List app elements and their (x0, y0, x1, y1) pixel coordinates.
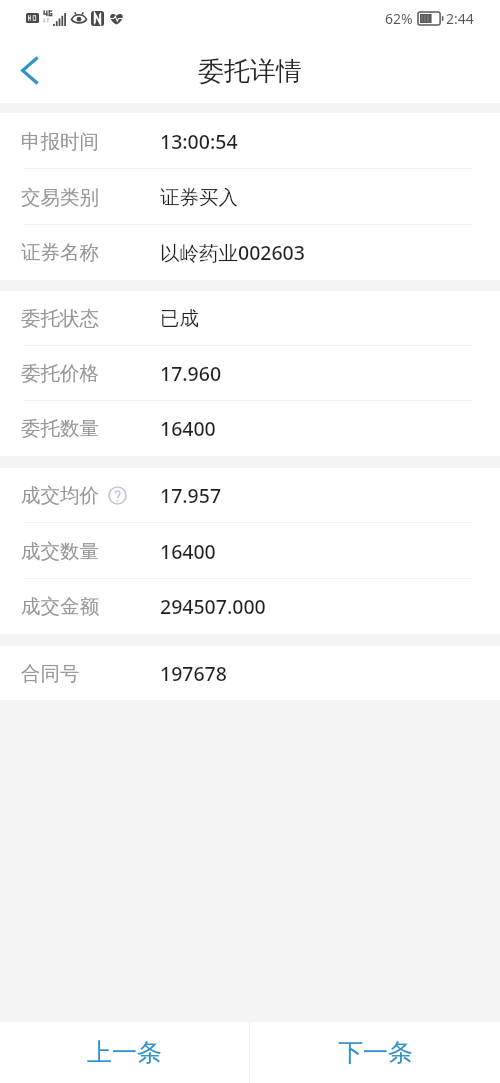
staticText: 交易类别 (21, 185, 99, 210)
staticText: 成交均价 (21, 483, 99, 508)
staticText: 合同号 (21, 661, 80, 686)
button[interactable]: 合同号 (0, 646, 500, 700)
staticText: 证券买入 (160, 185, 238, 210)
staticText: 委托状态 (21, 306, 99, 331)
button[interactable]: 委托状态 (0, 291, 500, 346)
staticText: 已成 (160, 306, 199, 331)
button[interactable]: 成交均价 (0, 468, 500, 523)
button[interactable]: Back (0, 42, 56, 98)
staticText: 16400 (160, 538, 216, 565)
button[interactable]: 下一条 (250, 1022, 500, 1083)
staticText: 成交金额 (21, 594, 99, 619)
button[interactable]: 委托价格 (0, 346, 500, 401)
button[interactable]: 申报时间 (0, 113, 500, 169)
button[interactable]: 成交金额 (0, 579, 500, 634)
staticText: 证券名称 (21, 240, 99, 265)
button[interactable]: 成交数量 (0, 523, 500, 579)
button[interactable]: 证券名称 (0, 225, 500, 280)
button[interactable]: 委托数量 (0, 401, 500, 456)
staticText: 13:00:54 (160, 128, 238, 155)
staticText: 197678 (160, 660, 227, 687)
staticText: 上一条 (87, 1037, 162, 1068)
staticText: 成交数量 (21, 539, 99, 564)
staticText: 以岭药业002603 (160, 239, 305, 266)
staticText: 16400 (160, 415, 216, 442)
staticText: 62% (385, 9, 413, 28)
button[interactable]: 交易类别 (0, 169, 500, 225)
staticText: 委托数量 (21, 416, 99, 441)
staticText: 17.960 (160, 360, 222, 387)
staticText: 委托详情 (198, 55, 302, 88)
staticText: 2:44 (446, 9, 474, 28)
staticText: 委托价格 (21, 361, 99, 386)
staticText: 17.957 (160, 482, 222, 509)
button[interactable]: 上一条 (0, 1022, 249, 1083)
staticText: 294507.000 (160, 593, 266, 620)
staticText: 申报时间 (21, 129, 99, 154)
staticText: 下一条 (338, 1037, 413, 1068)
